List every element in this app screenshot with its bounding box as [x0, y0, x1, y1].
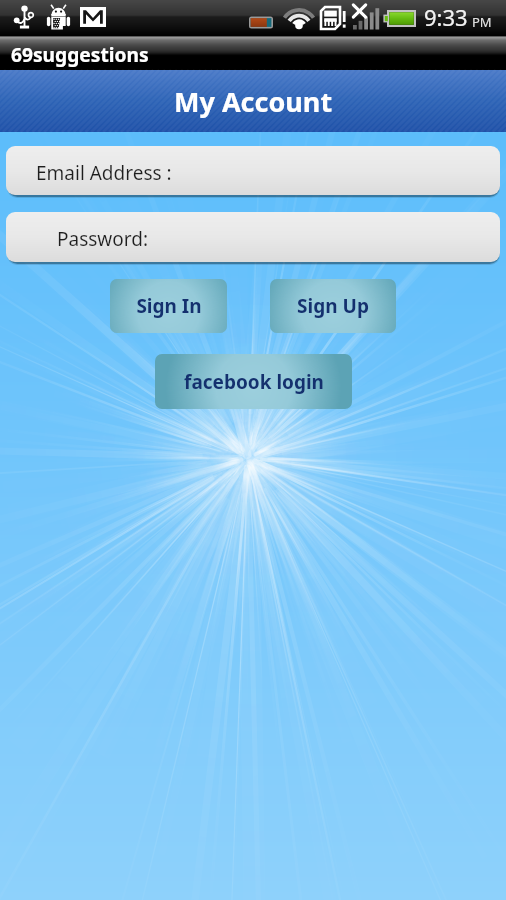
- button[interactable]: Email Address :: [6, 146, 500, 195]
- staticText: facebook login: [184, 369, 324, 395]
- staticText: PM: [472, 13, 492, 31]
- button[interactable]: facebook login: [155, 354, 352, 409]
- staticText: 69suggestions: [11, 41, 149, 67]
- button[interactable]: Sign In: [110, 279, 227, 333]
- staticText: 9:33: [424, 2, 468, 32]
- staticText: My Account: [174, 83, 333, 120]
- staticText: Sign In: [136, 293, 202, 319]
- button[interactable]: Password:: [6, 212, 500, 262]
- staticText: Email Address :: [36, 160, 172, 186]
- staticText: Password:: [57, 226, 149, 252]
- staticText: Sign Up: [297, 293, 369, 319]
- button[interactable]: Sign Up: [270, 279, 396, 333]
